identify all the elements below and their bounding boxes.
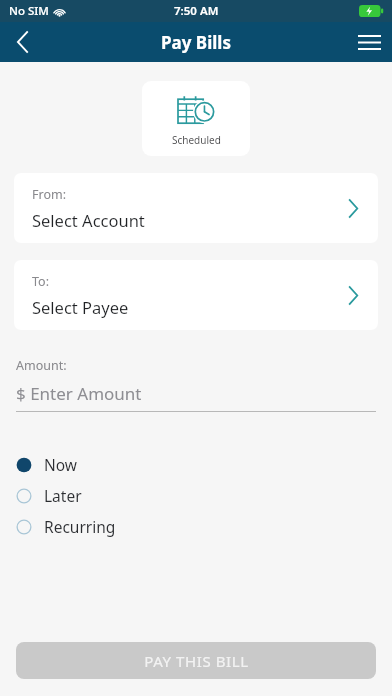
staticText: To: <box>32 273 49 290</box>
button[interactable]: Later <box>0 480 392 511</box>
button[interactable]: Menu <box>346 22 392 62</box>
staticText: Scheduled <box>172 133 221 147</box>
staticText: Amount: <box>16 357 67 374</box>
staticText: 7:50 AM <box>174 3 219 19</box>
staticText: PAY THIS BILL <box>144 651 249 671</box>
staticText: Later <box>44 485 82 506</box>
staticText: No SIM <box>9 3 49 19</box>
staticText: Pay Bills <box>161 31 231 54</box>
staticText: $ Enter Amount <box>16 382 142 405</box>
staticText: Select Payee <box>32 296 129 318</box>
staticText: Select Account <box>32 209 145 231</box>
button[interactable]: Recurring <box>0 511 392 542</box>
button[interactable]: Now <box>0 449 392 480</box>
button[interactable]: From: <box>14 173 378 243</box>
staticText: Now <box>44 454 78 475</box>
button[interactable]: To: <box>14 260 378 330</box>
button[interactable]: Scheduled <box>142 81 250 156</box>
staticText: Recurring <box>44 516 116 537</box>
button[interactable]: PAY THIS BILL <box>16 642 376 679</box>
button[interactable]: Back <box>0 22 44 62</box>
staticText: From: <box>32 186 67 203</box>
